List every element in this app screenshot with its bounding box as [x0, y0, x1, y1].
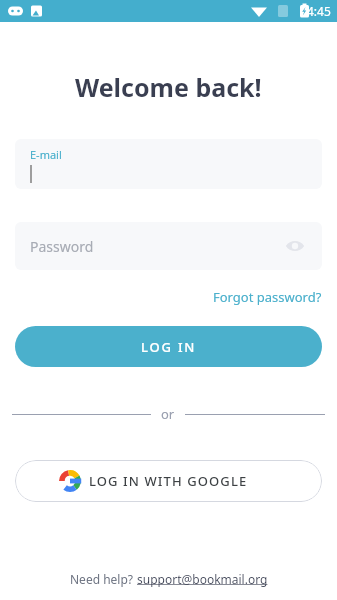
button[interactable]: Show password	[280, 231, 310, 261]
staticText: E-mail	[30, 147, 62, 162]
button[interactable]: LOG IN WITH GOOGLE	[15, 460, 322, 502]
staticText: LOG IN WITH GOOGLE	[89, 472, 248, 490]
button[interactable]: LOG IN	[15, 326, 322, 367]
staticText: 4:45	[307, 3, 331, 19]
staticText: Welcome back!	[75, 70, 262, 104]
staticText: support@bookmail.org	[137, 571, 268, 587]
button[interactable]: Password	[15, 222, 322, 270]
staticText: Password	[30, 237, 94, 256]
staticText: Forgot password?	[213, 288, 322, 306]
staticText: LOG IN	[141, 338, 197, 356]
button[interactable]: Need help?	[70, 571, 268, 587]
button[interactable]: Forgot password?	[209, 284, 326, 310]
staticText: or	[161, 405, 175, 423]
button[interactable]: E-mail	[15, 139, 322, 189]
staticText: Need help?	[70, 571, 137, 587]
